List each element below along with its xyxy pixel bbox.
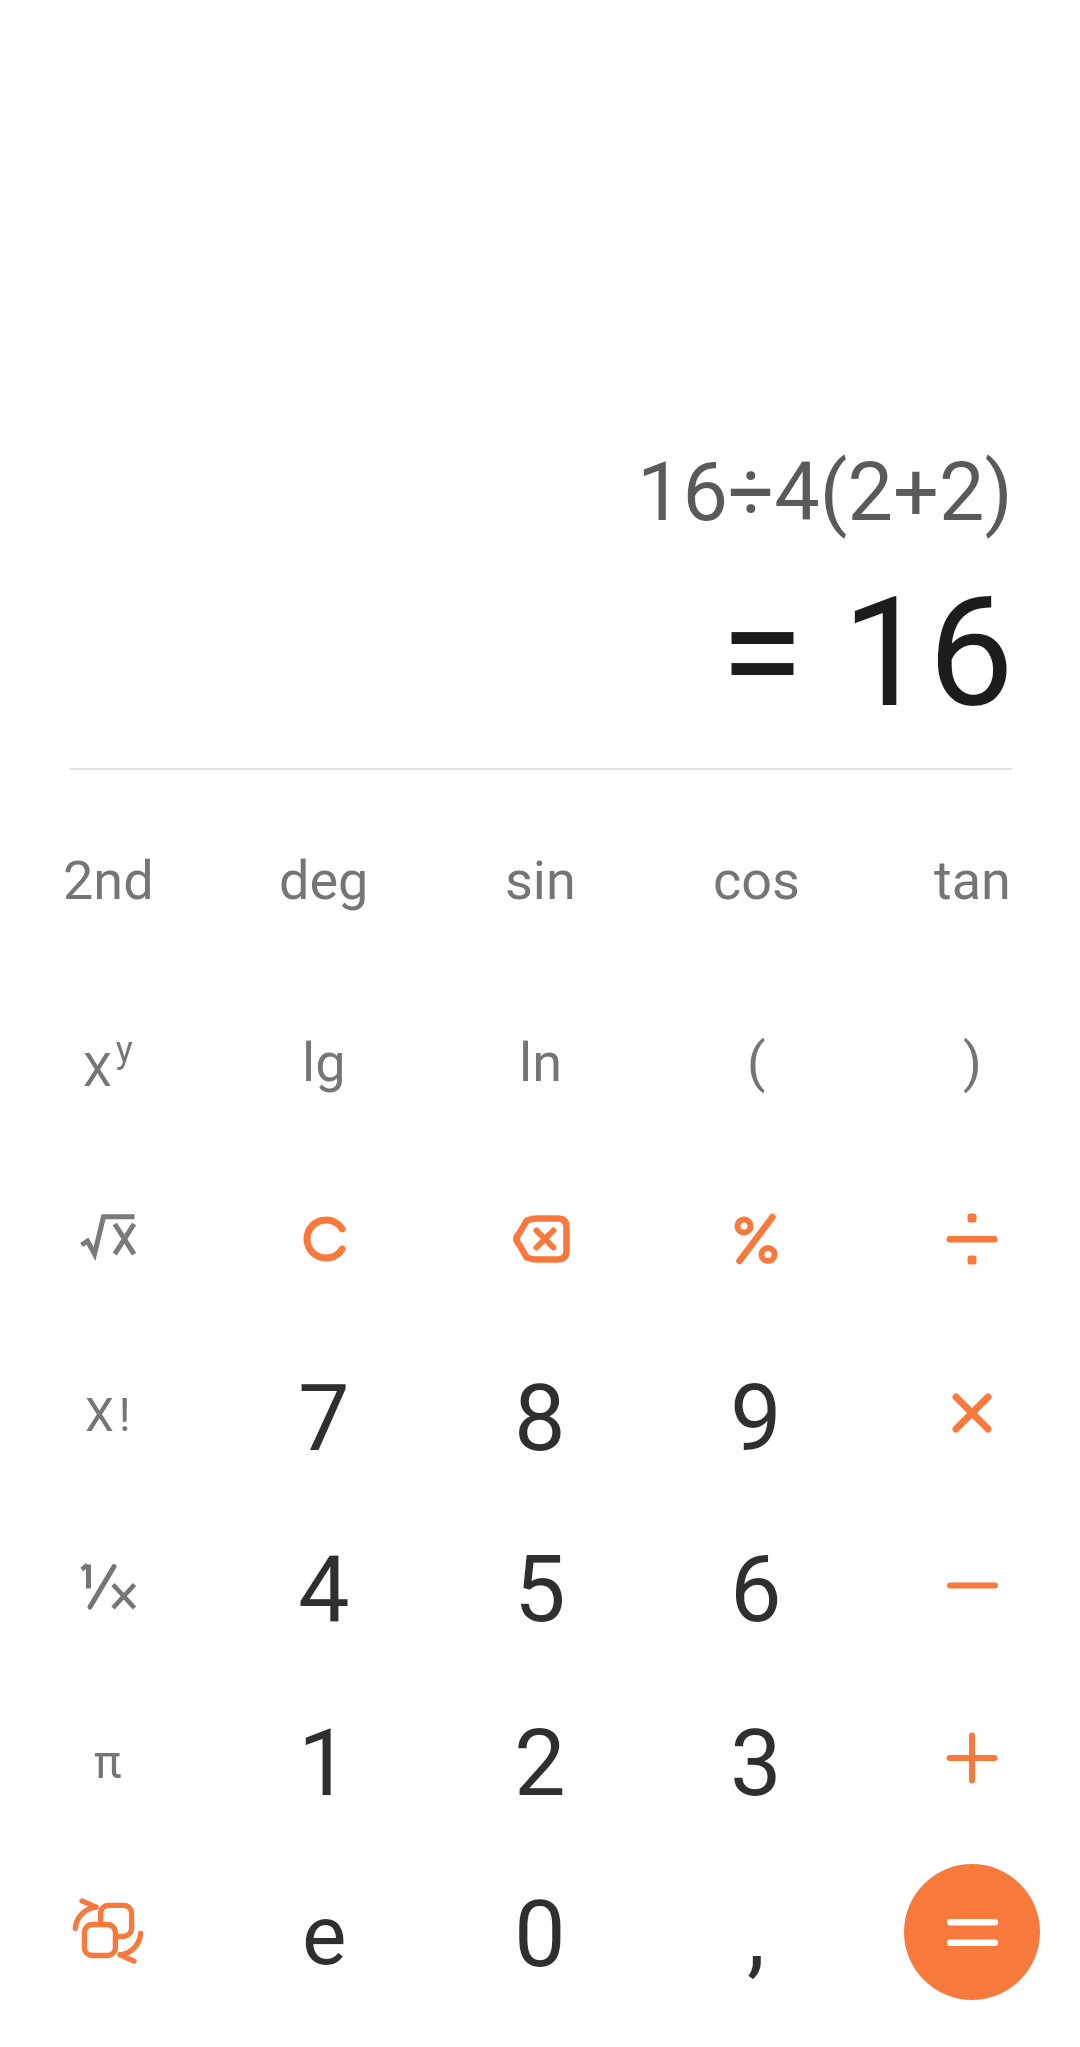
button[interactable]: e xyxy=(216,1849,432,2021)
button[interactable]: 2nd xyxy=(0,794,216,966)
staticText: deg xyxy=(279,849,369,912)
staticText: tan xyxy=(934,849,1011,912)
button[interactable]: ( xyxy=(648,976,864,1148)
button[interactable]: ln xyxy=(432,976,648,1148)
staticText: ln xyxy=(519,1031,562,1094)
staticText: ) xyxy=(963,1031,982,1094)
staticText: e xyxy=(302,1886,347,1984)
button[interactable] xyxy=(648,1153,864,1325)
button[interactable]: lg xyxy=(216,976,432,1148)
staticText: 4 xyxy=(298,1536,350,1644)
button[interactable]: 5 xyxy=(432,1504,648,1676)
button[interactable]: 0 xyxy=(432,1849,648,2021)
button[interactable]: 6 xyxy=(648,1504,864,1676)
button[interactable] xyxy=(864,1672,1080,1844)
button[interactable]: π xyxy=(0,1676,216,1848)
button[interactable]: Xy xyxy=(0,977,216,1149)
button[interactable]: 1 xyxy=(216,1678,432,1850)
button[interactable]: cos xyxy=(648,794,864,966)
button[interactable]: 3 xyxy=(648,1678,864,1850)
button[interactable]: 9 xyxy=(648,1333,864,1505)
staticText: 8 xyxy=(514,1365,566,1473)
staticText: sin xyxy=(505,849,576,912)
staticText: 9 xyxy=(730,1365,782,1473)
button[interactable]: X! xyxy=(0,1329,216,1501)
button[interactable]: 8 xyxy=(432,1333,648,1505)
button[interactable]: tan xyxy=(864,794,1080,966)
button[interactable] xyxy=(0,1149,216,1321)
button[interactable] xyxy=(218,1153,434,1325)
staticText: lg xyxy=(302,1031,346,1094)
button[interactable]: sin xyxy=(432,794,648,966)
staticText: = 16 xyxy=(720,563,1014,742)
staticText: π xyxy=(94,1735,122,1789)
staticText: X! xyxy=(85,1388,131,1442)
staticText: 5 xyxy=(514,1536,566,1644)
button[interactable] xyxy=(432,1153,648,1325)
staticText: cos xyxy=(713,849,800,912)
staticText: , xyxy=(747,1881,766,1989)
button[interactable]: 2 xyxy=(432,1678,648,1850)
button[interactable]: deg xyxy=(216,794,432,966)
staticText: ( xyxy=(747,1031,766,1094)
staticText: 7 xyxy=(298,1365,350,1473)
button[interactable]: ) xyxy=(864,976,1080,1148)
staticText: 0 xyxy=(514,1881,566,1989)
button[interactable]: 4 xyxy=(216,1504,432,1676)
button[interactable] xyxy=(864,1327,1080,1499)
button[interactable]: , xyxy=(648,1849,864,2021)
button[interactable] xyxy=(864,1846,1080,2018)
staticText: Xy xyxy=(83,1029,133,1098)
staticText: 3 xyxy=(730,1710,782,1818)
staticText: 1 xyxy=(298,1710,350,1818)
button[interactable] xyxy=(864,1153,1080,1325)
staticText: 6 xyxy=(730,1536,782,1644)
staticText: 2 xyxy=(514,1710,566,1818)
button[interactable] xyxy=(0,1499,216,1671)
button[interactable]: 7 xyxy=(216,1333,432,1505)
button[interactable] xyxy=(864,1499,1080,1671)
staticText: 16÷4(2+2) xyxy=(637,445,1013,540)
button[interactable] xyxy=(0,1845,216,2017)
staticText: 2nd xyxy=(63,849,154,912)
